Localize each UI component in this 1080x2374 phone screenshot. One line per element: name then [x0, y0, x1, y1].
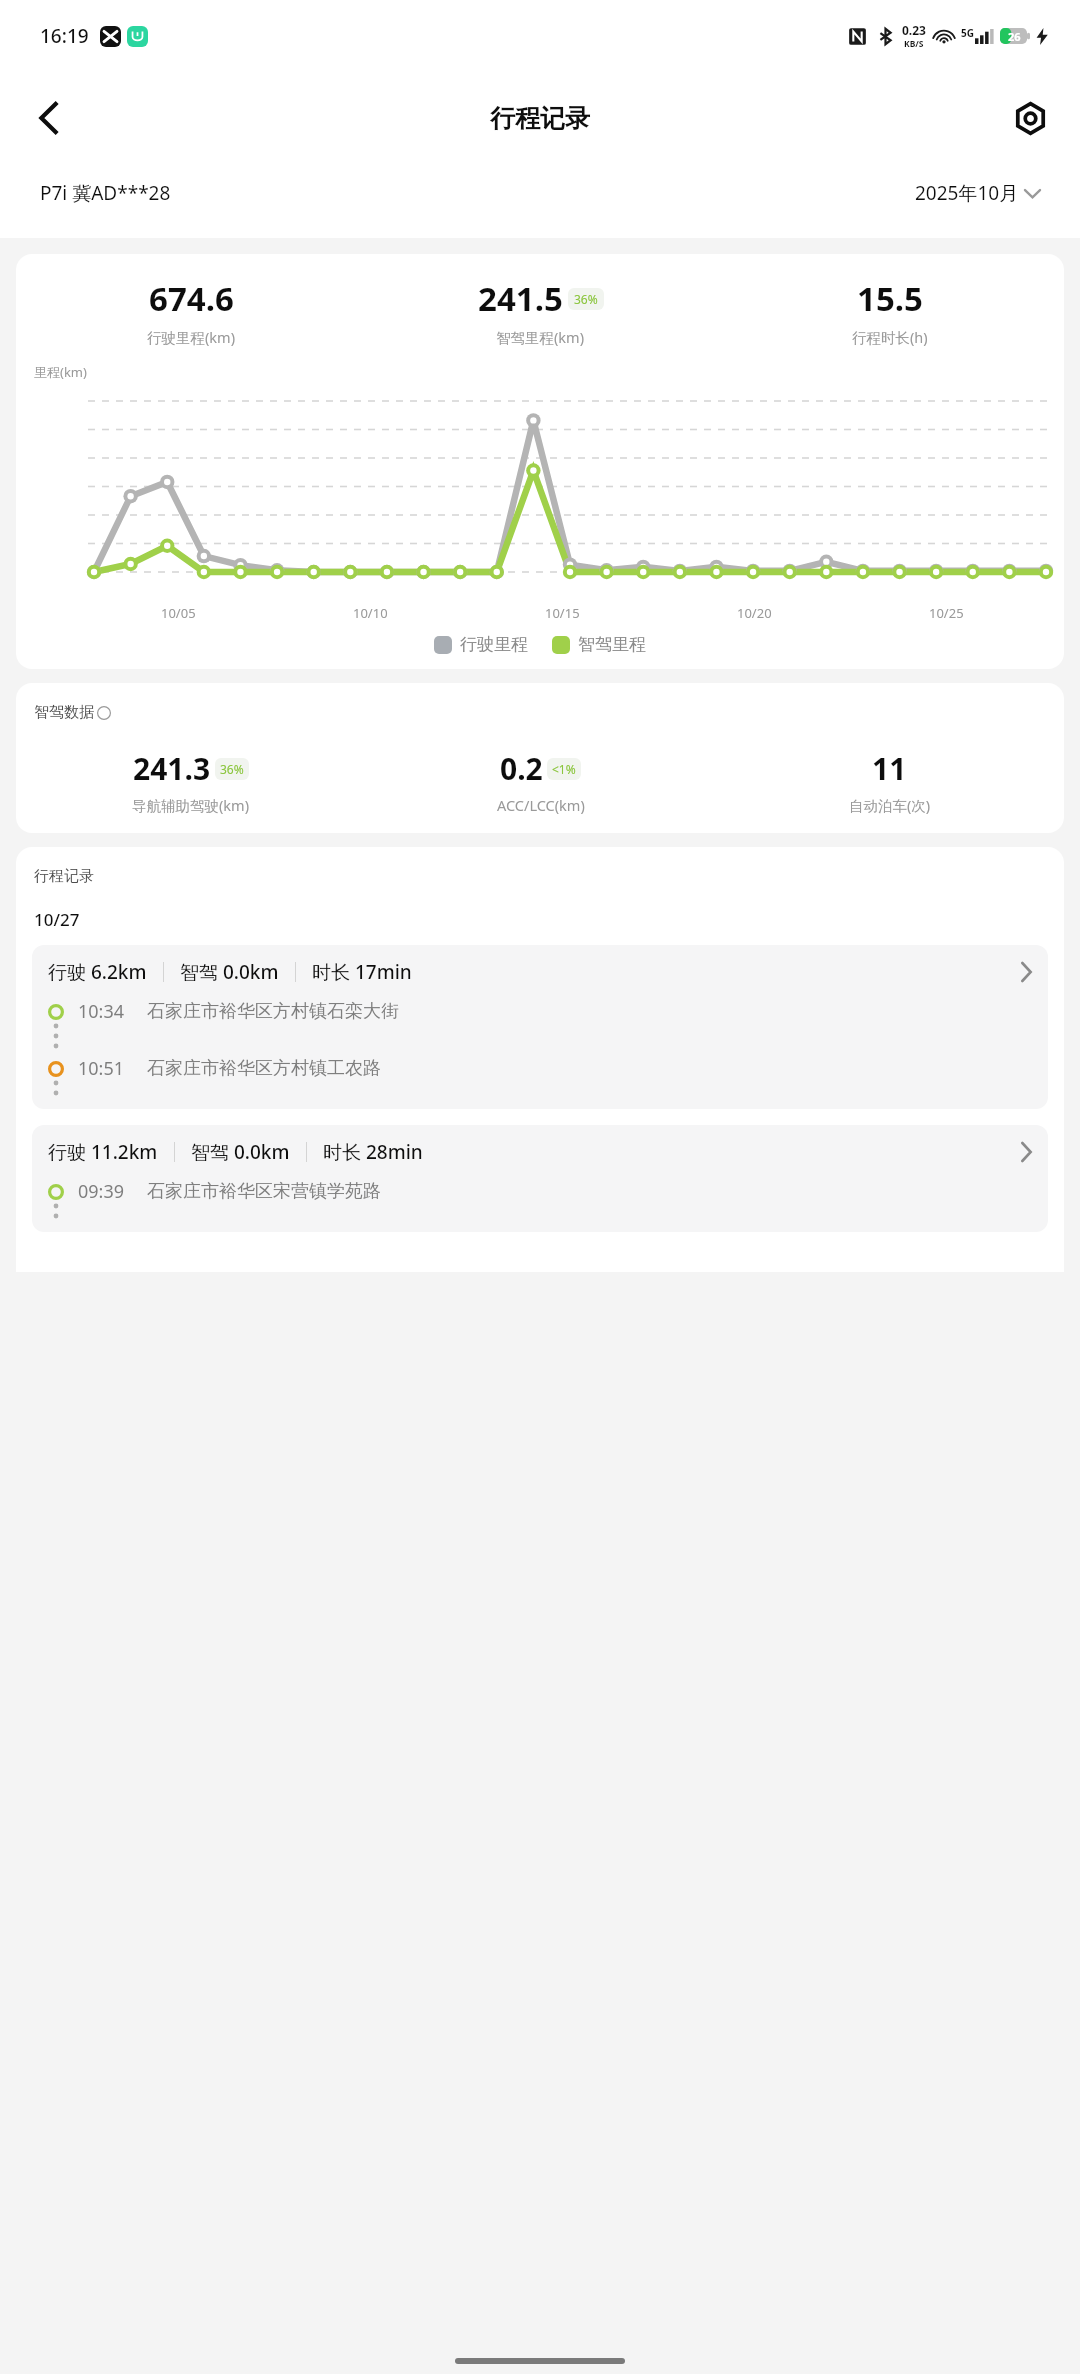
staticText: 5G — [961, 26, 974, 40]
staticText: 智驾 0.0km — [180, 959, 279, 985]
staticText: 10:51 — [78, 1056, 125, 1081]
staticText: KB/S — [904, 38, 924, 50]
staticText: 36% — [574, 291, 598, 307]
staticText: 10/27 — [34, 908, 80, 931]
staticText: 241.3 — [133, 748, 211, 789]
button[interactable]: 行驶 6.2km — [32, 945, 1048, 1109]
staticText: 10/15 — [545, 604, 580, 622]
staticText: 0.23 — [902, 22, 926, 38]
staticText: 行程时长(h) — [852, 327, 928, 347]
staticText: 石家庄市裕华区方村镇工农路 — [147, 1057, 381, 1080]
staticText: 时长 28min — [323, 1139, 423, 1165]
staticText: 16:19 — [40, 23, 89, 49]
staticText: 10/25 — [929, 604, 964, 622]
button[interactable]: 2025年10月 — [915, 180, 1040, 206]
staticText: 2025年10月 — [915, 180, 1019, 206]
button[interactable]: 行驶 11.2km — [32, 1125, 1048, 1232]
button[interactable]: 返回 — [20, 90, 76, 146]
staticText: 241.5 — [478, 276, 563, 321]
staticText: 导航辅助驾驶(km) — [132, 795, 250, 815]
staticText: 10/10 — [353, 604, 388, 622]
staticText: P7i 冀AD***28 — [40, 180, 171, 206]
staticText: 智驾数据 — [34, 703, 94, 722]
staticText: 09:39 — [78, 1179, 125, 1204]
button[interactable]: 设置 — [1004, 92, 1056, 144]
staticText: 智驾里程 — [578, 634, 646, 655]
staticText: 自动泊车(次) — [849, 795, 931, 815]
staticText: 时长 17min — [312, 959, 412, 985]
staticText: 10/05 — [161, 604, 196, 622]
staticText: 石家庄市裕华区宋营镇学苑路 — [147, 1180, 381, 1203]
staticText: 0.2 — [500, 748, 543, 789]
staticText: 里程(km) — [34, 363, 87, 381]
staticText: 行程记录 — [34, 867, 94, 886]
staticText: 智驾 0.0km — [191, 1139, 290, 1165]
staticText: 300 — [49, 378, 72, 379]
staticText: 26 — [1008, 29, 1021, 44]
staticText: 674.6 — [149, 276, 234, 321]
button[interactable]: 帮助 — [97, 706, 111, 720]
staticText: 10/20 — [737, 604, 772, 622]
staticText: 石家庄市裕华区方村镇石栾大街 — [147, 1000, 399, 1023]
staticText: 15.5 — [857, 276, 923, 321]
staticText: 行驶里程(km) — [147, 327, 236, 347]
staticText: 行驶 6.2km — [48, 959, 147, 985]
staticText: 行驶里程 — [460, 634, 528, 655]
staticText: 行程记录 — [490, 103, 590, 134]
staticText: 智驾里程(km) — [496, 327, 585, 347]
staticText: ACC/LCC(km) — [497, 795, 585, 815]
staticText: 10:34 — [78, 999, 125, 1024]
staticText: 行驶 11.2km — [48, 1139, 158, 1165]
staticText: 11 — [872, 748, 907, 789]
staticText: <1% — [552, 761, 576, 777]
staticText: 36% — [220, 761, 244, 777]
